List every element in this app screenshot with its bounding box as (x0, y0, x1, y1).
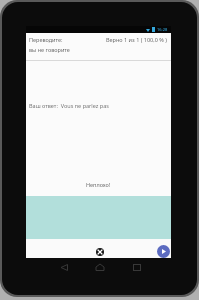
staticText: Ваш ответ: Vous ne parlez pas (29, 102, 109, 109)
button[interactable] (157, 245, 170, 258)
staticText: вы не говорите (29, 46, 70, 53)
staticText: 16:28 (157, 27, 168, 32)
staticText: Неплохо! (86, 181, 111, 188)
staticText: Переводите: (29, 36, 63, 43)
button[interactable] (96, 248, 104, 256)
staticText: Верно 1 из 1 ( 100,0 % ) (106, 36, 167, 43)
